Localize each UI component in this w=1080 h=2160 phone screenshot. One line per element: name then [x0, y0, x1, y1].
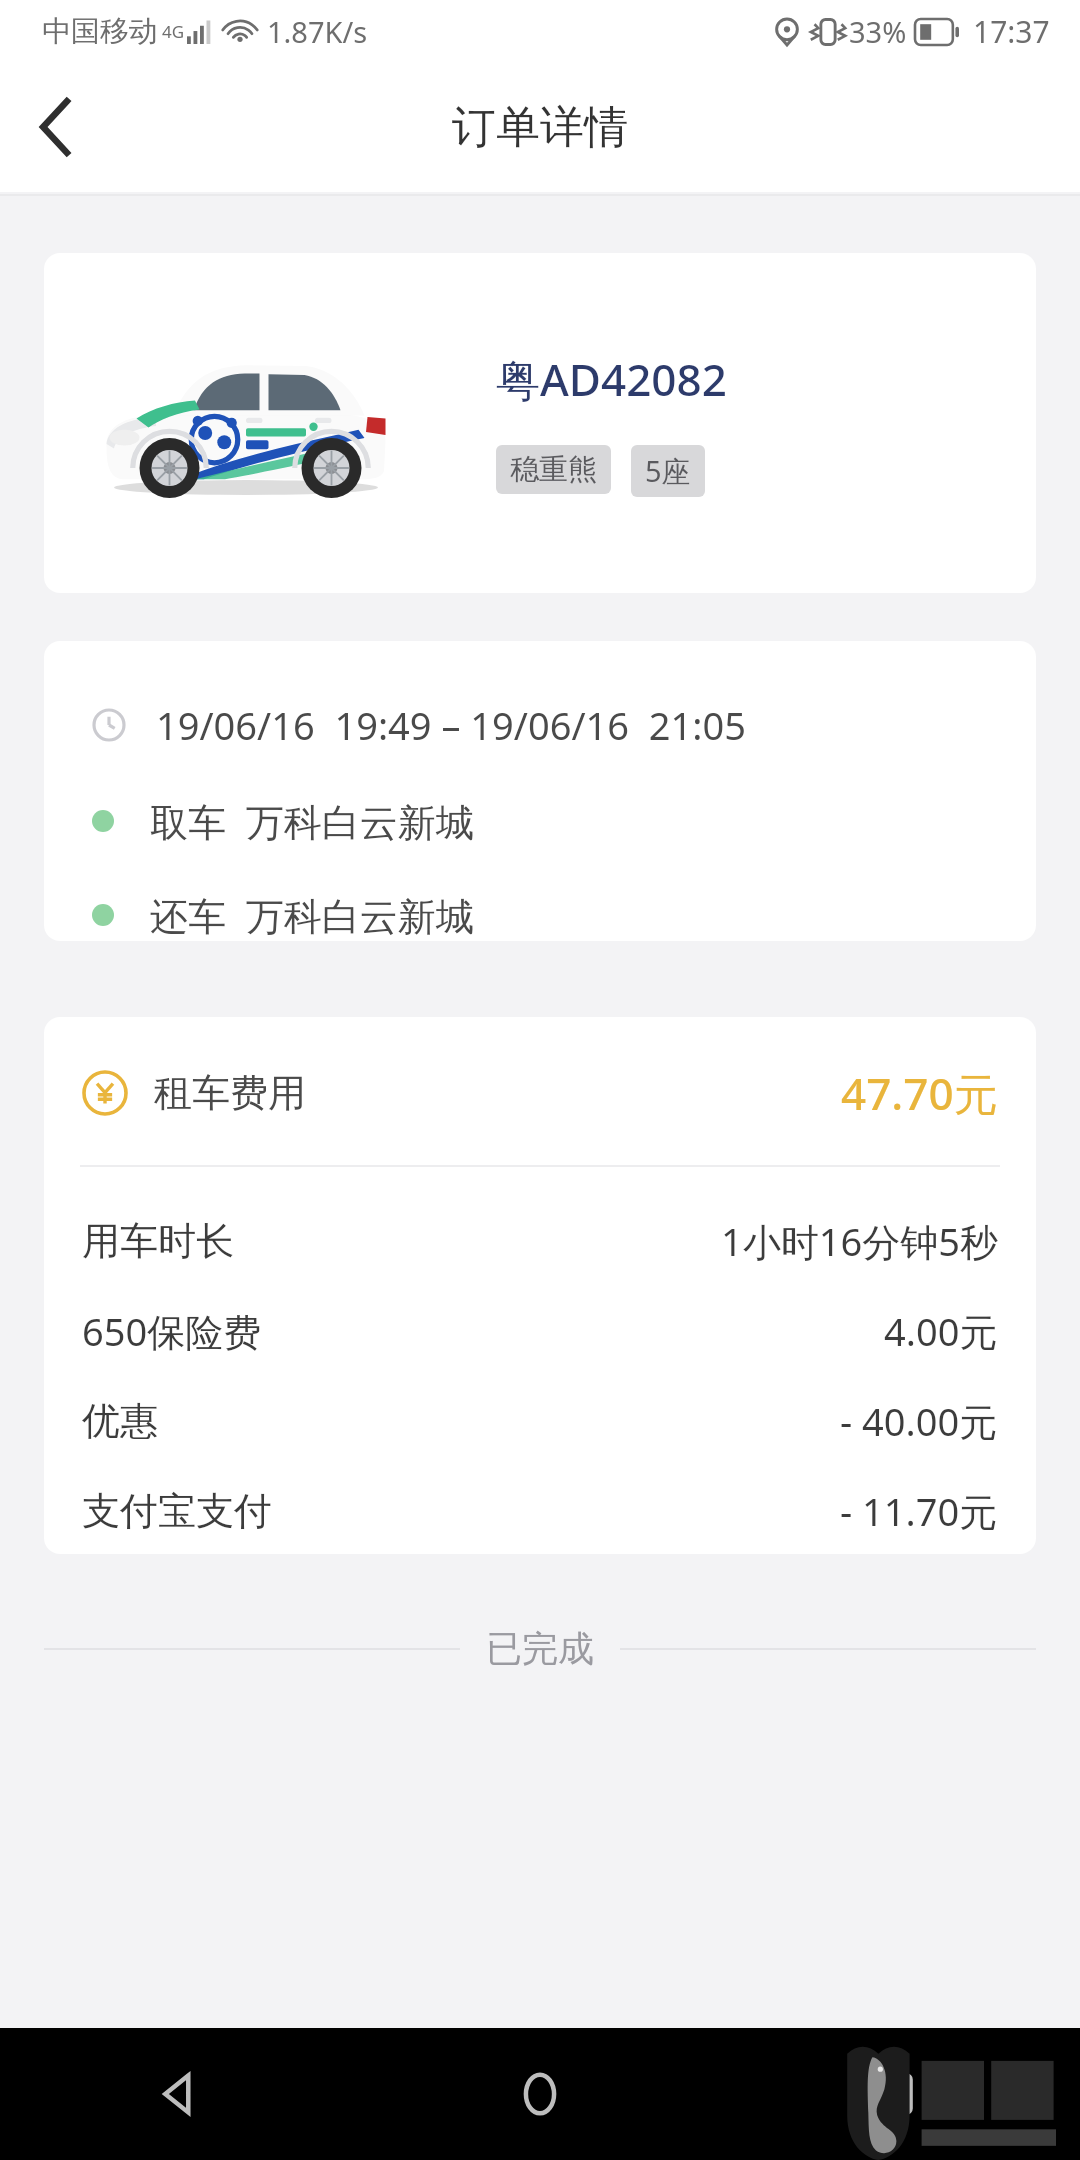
- staticText: 订单详情: [452, 100, 628, 155]
- button[interactable]: 返回: [0, 2028, 360, 2160]
- staticText: 47.70元: [841, 1063, 998, 1123]
- staticText: - 11.70元: [840, 1485, 998, 1537]
- button[interactable]: 返回: [0, 71, 112, 183]
- staticText: 4G: [162, 20, 185, 43]
- button[interactable]: 19/06/16 19:49 – 19/06/16 21:05: [44, 641, 1036, 941]
- staticText: 粤AD42082: [496, 349, 727, 409]
- staticText: 稳重熊: [510, 451, 597, 488]
- staticText: 1.87K/s: [267, 12, 368, 51]
- staticText: 650保险费: [82, 1305, 262, 1357]
- staticText: 优惠: [82, 1397, 158, 1445]
- staticText: 支付宝支付: [82, 1487, 272, 1535]
- staticText: 17:37: [973, 11, 1050, 52]
- staticText: 已完成: [486, 1626, 594, 1671]
- staticText: 还车 万科白云新城: [150, 889, 474, 941]
- staticText: 4.00元: [884, 1305, 998, 1357]
- staticText: 租车费用: [154, 1069, 306, 1117]
- staticText: 中国移动: [42, 13, 158, 50]
- staticText: - 40.00元: [840, 1395, 998, 1447]
- button[interactable]: 粤AD42082: [44, 253, 1036, 593]
- staticText: 1小时16分钟5秒: [721, 1215, 998, 1267]
- staticText: 19/06/16 19:49 – 19/06/16 21:05: [156, 699, 746, 751]
- staticText: 用车时长: [82, 1217, 234, 1265]
- staticText: 5座: [645, 451, 691, 491]
- button[interactable]: 主屏幕: [360, 2028, 720, 2160]
- staticText: 取车 万科白云新城: [150, 795, 474, 847]
- button[interactable]: 最近任务: [720, 2028, 1080, 2160]
- staticText: 33%: [849, 12, 907, 51]
